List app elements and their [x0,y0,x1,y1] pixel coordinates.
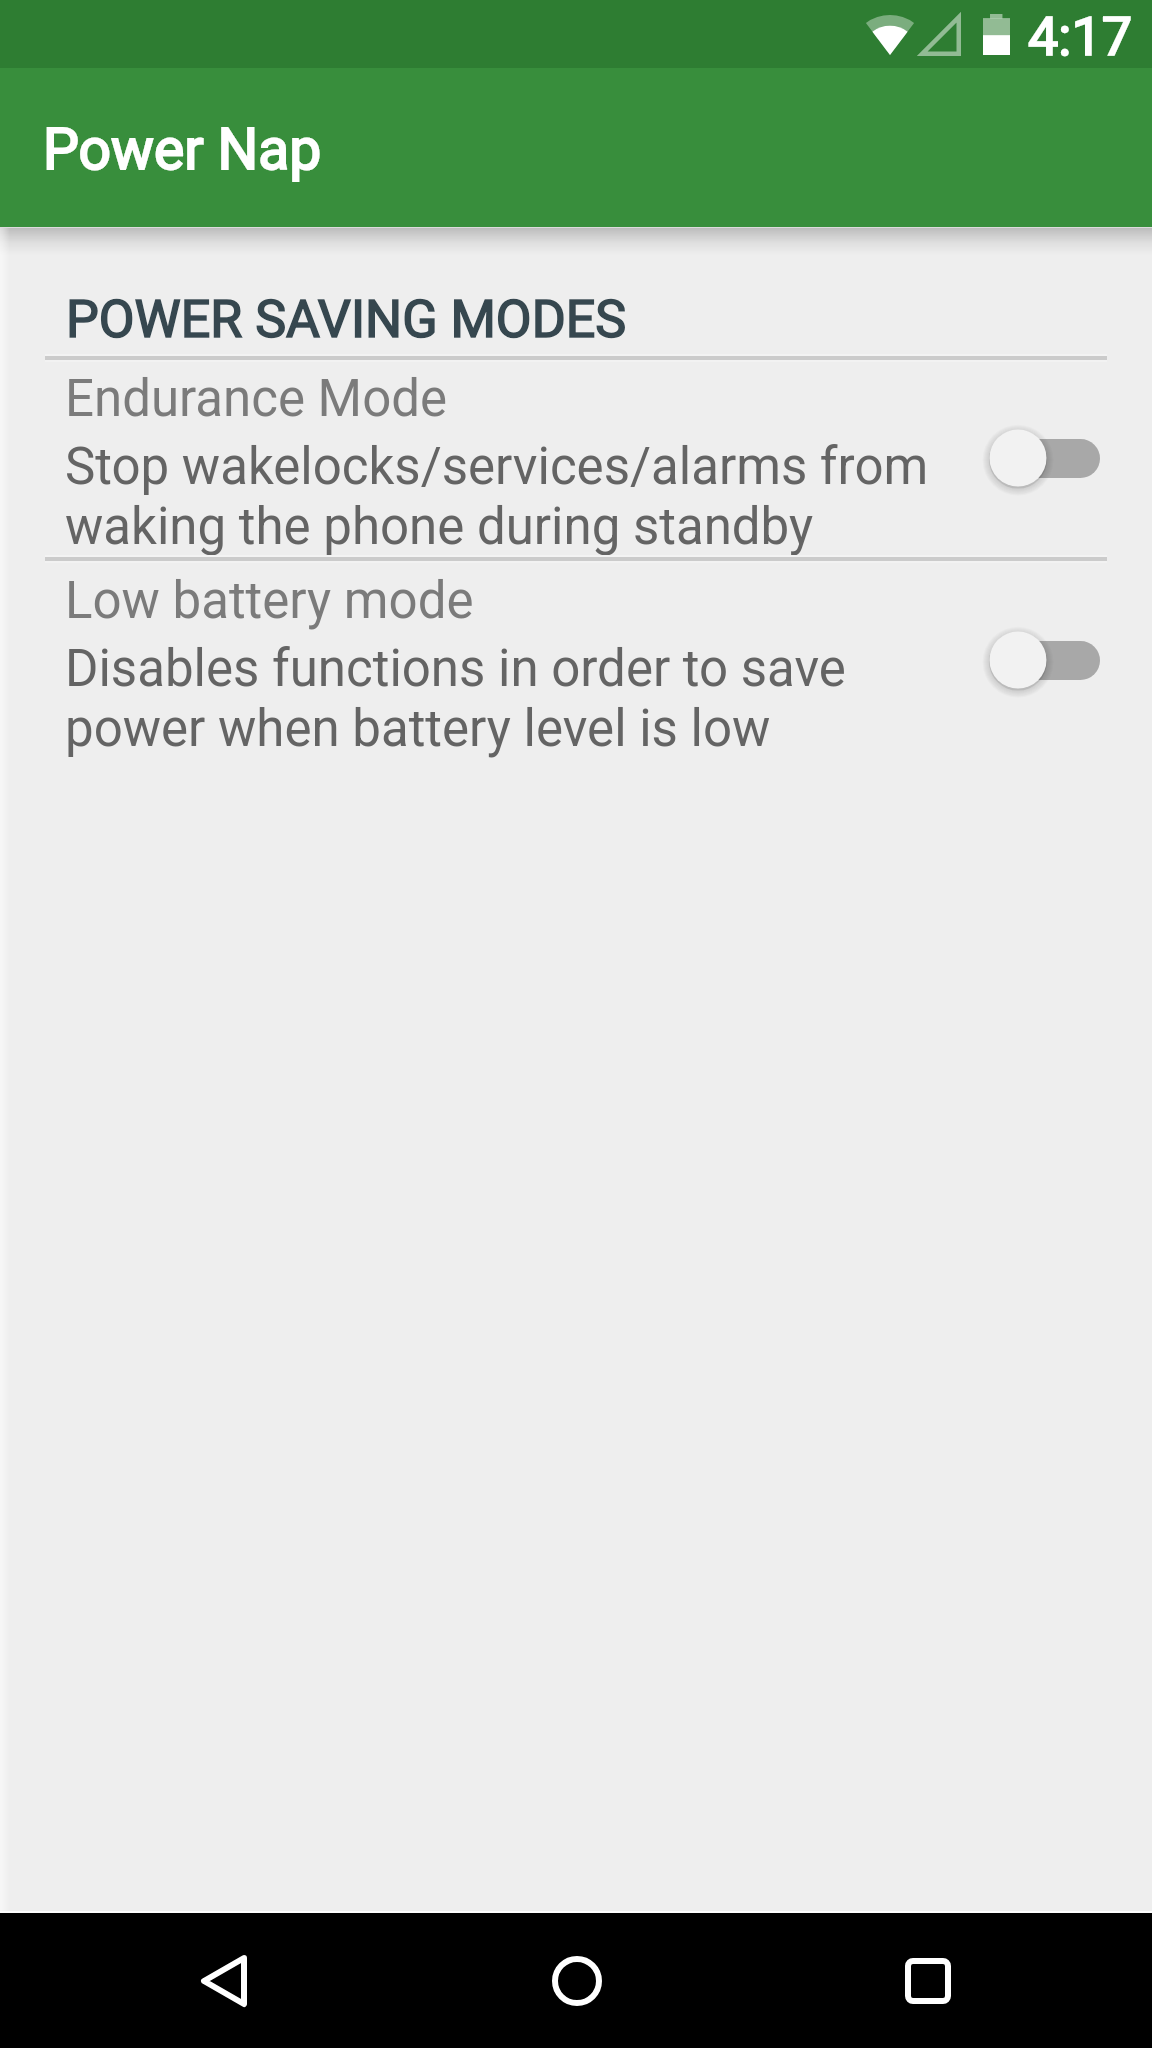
staticText: Stop wakelocks/services/alarms from waki… [65,437,955,557]
button[interactable]: Back [201,1955,247,2007]
button[interactable]: Home [551,1955,603,2007]
button[interactable]: Low battery mode [0,551,1152,752]
button[interactable]: Toggle off [985,426,1100,490]
staticText: POWER SAVING MODES [66,289,627,350]
button[interactable]: Recent apps [905,1958,951,2004]
staticText: 4:17 [1028,5,1133,68]
staticText: Endurance Mode [65,369,448,429]
button[interactable]: Toggle off [985,628,1100,692]
staticText: Disables functions in order to save powe… [65,639,955,759]
button[interactable]: Endurance Mode [0,349,1152,550]
staticText: Power Nap [43,116,322,183]
staticText: Low battery mode [65,571,474,631]
